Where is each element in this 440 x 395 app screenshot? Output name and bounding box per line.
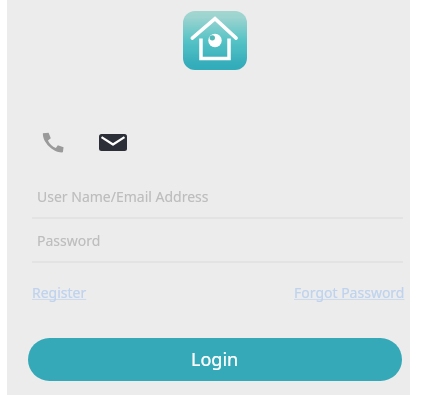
- staticText: Register: [32, 283, 87, 302]
- staticText: Login: [191, 347, 239, 372]
- button[interactable]: Sign in with email address: [92, 122, 134, 162]
- button[interactable]: User Name/Email Address: [37, 177, 408, 215]
- staticText: Password: [37, 231, 101, 250]
- button[interactable]: App logo: [183, 11, 247, 70]
- button[interactable]: Register: [32, 281, 87, 303]
- button[interactable]: Password: [37, 221, 408, 259]
- button[interactable]: Sign in with phone number: [32, 122, 74, 162]
- button[interactable]: Forgot Password: [294, 281, 405, 303]
- staticText: Forgot Password: [294, 283, 405, 302]
- staticText: User Name/Email Address: [37, 187, 209, 206]
- button[interactable]: Login: [28, 338, 402, 381]
